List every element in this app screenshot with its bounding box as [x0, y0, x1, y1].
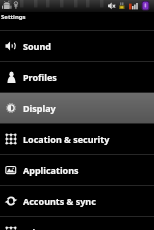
button[interactable]: Accounts & sync [0, 186, 154, 216]
button[interactable]: Location & security [0, 124, 154, 154]
button[interactable]: Privacy [0, 217, 154, 230]
staticText: Accounts & sync [23, 195, 96, 207]
staticText: Settings [1, 13, 26, 21]
staticText: Sound [23, 40, 51, 52]
staticText: Location & security [23, 133, 110, 145]
staticText: Display [23, 102, 56, 114]
button[interactable]: Status bar [0, 0, 154, 12]
button[interactable]: Profiles [0, 62, 154, 92]
staticText: Profiles [23, 71, 57, 83]
staticText: Privacy [23, 226, 56, 230]
button[interactable]: Sound [0, 31, 154, 61]
button[interactable]: Applications [0, 155, 154, 185]
staticText: Applications [23, 164, 79, 176]
button[interactable]: Display [0, 93, 154, 123]
